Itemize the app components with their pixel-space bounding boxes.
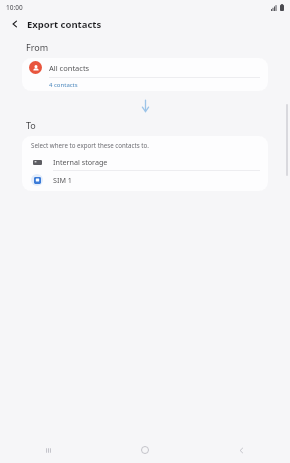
staticText: 10:00 [6, 3, 23, 12]
staticText: All contacts [49, 63, 90, 73]
staticText: Export contacts [27, 18, 102, 31]
button[interactable]: SIM 1 [22, 171, 268, 188]
staticText: From [26, 41, 49, 53]
button[interactable]: Recents [0, 437, 96, 463]
staticText: To [26, 119, 36, 131]
button[interactable]: All contacts [22, 58, 268, 77]
button[interactable]: Back [6, 15, 24, 33]
staticText: Select where to export these contacts to… [31, 141, 149, 149]
button[interactable]: Home [96, 437, 193, 463]
staticText: SIM 1 [53, 175, 72, 185]
staticText: 4 contacts [49, 81, 78, 89]
button[interactable]: Internal storage [22, 153, 268, 170]
staticText: Internal storage [53, 157, 108, 167]
button[interactable]: 4 contacts [22, 78, 268, 91]
